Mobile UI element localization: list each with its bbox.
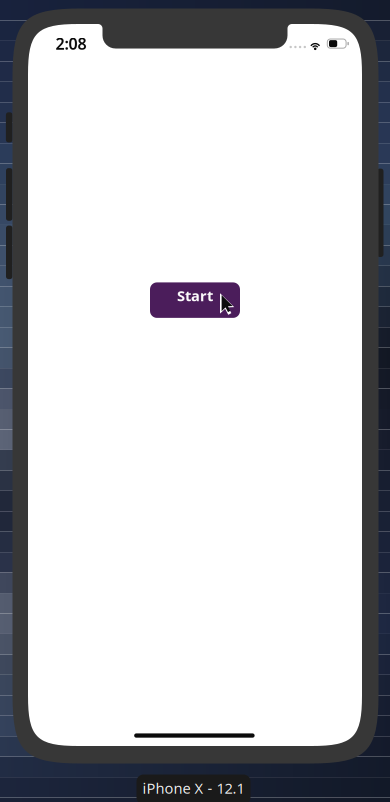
staticText: iPhone X - 12.1 xyxy=(142,778,244,798)
button[interactable]: Start xyxy=(150,282,240,318)
staticText: Start xyxy=(177,286,213,305)
staticText: 2:08 xyxy=(55,33,86,54)
